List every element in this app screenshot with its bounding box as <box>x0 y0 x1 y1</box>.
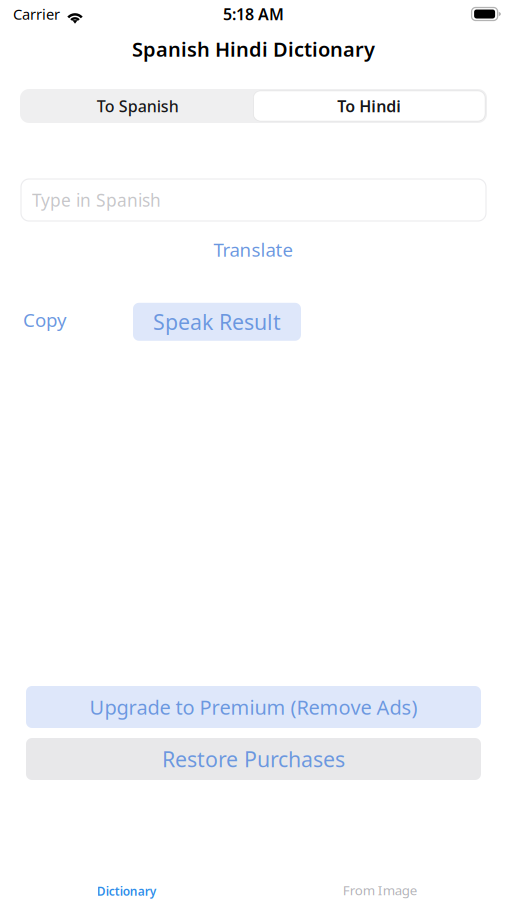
button[interactable]: To Hindi <box>253 91 485 121</box>
staticText: From Image <box>343 881 418 899</box>
staticText: Copy <box>23 307 67 332</box>
staticText: Upgrade to Premium (Remove Ads) <box>89 694 417 720</box>
staticText: To Hindi <box>337 95 401 117</box>
button[interactable]: From Image <box>253 864 507 900</box>
button[interactable]: Copy <box>21 299 69 340</box>
staticText: 5:18 AM <box>223 3 284 25</box>
button[interactable]: Restore Purchases <box>26 738 481 780</box>
button[interactable]: Upgrade to Premium (Remove Ads) <box>26 686 481 728</box>
staticText: Carrier <box>13 4 60 24</box>
staticText: Restore Purchases <box>162 745 345 773</box>
staticText: Dictionary <box>97 883 157 899</box>
button[interactable]: Speak Result <box>133 299 301 341</box>
staticText: Type in Spanish <box>32 188 161 211</box>
button[interactable]: To Spanish <box>22 91 253 121</box>
button[interactable]: Translate <box>205 231 301 268</box>
button[interactable]: Type in Spanish <box>21 179 486 221</box>
staticText: To Spanish <box>97 95 179 117</box>
button[interactable]: Dictionary <box>0 864 253 900</box>
staticText: Spanish Hindi Dictionary <box>132 36 375 62</box>
staticText: Speak Result <box>153 308 281 336</box>
staticText: Translate <box>213 237 293 262</box>
